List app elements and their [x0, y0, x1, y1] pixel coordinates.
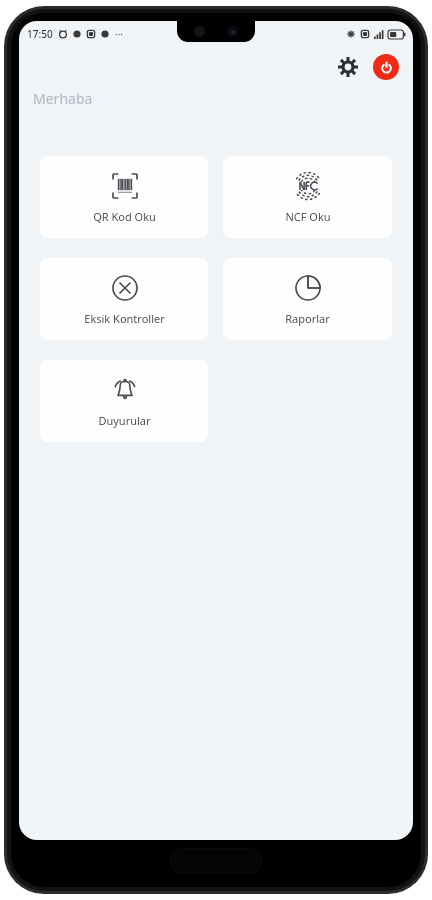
button[interactable]: NCF Oku	[223, 156, 392, 238]
staticText: Duyurular	[98, 413, 151, 428]
staticText: Eksik Kontroller	[84, 311, 165, 326]
button[interactable]: Settings	[333, 52, 363, 82]
staticText: NCF Oku	[285, 209, 331, 224]
button[interactable]: Duyurular	[40, 360, 208, 442]
staticText: QR Kod Oku	[93, 209, 156, 224]
staticText: ···	[115, 27, 124, 41]
button[interactable]: QR Kod Oku	[40, 156, 208, 238]
button[interactable]: Log out	[373, 54, 399, 80]
staticText: Raporlar	[285, 311, 330, 326]
button[interactable]: Raporlar	[223, 258, 392, 340]
staticText: 17:50	[27, 27, 53, 41]
button[interactable]: Eksik Kontroller	[40, 258, 208, 340]
staticText: Merhaba	[33, 89, 93, 108]
